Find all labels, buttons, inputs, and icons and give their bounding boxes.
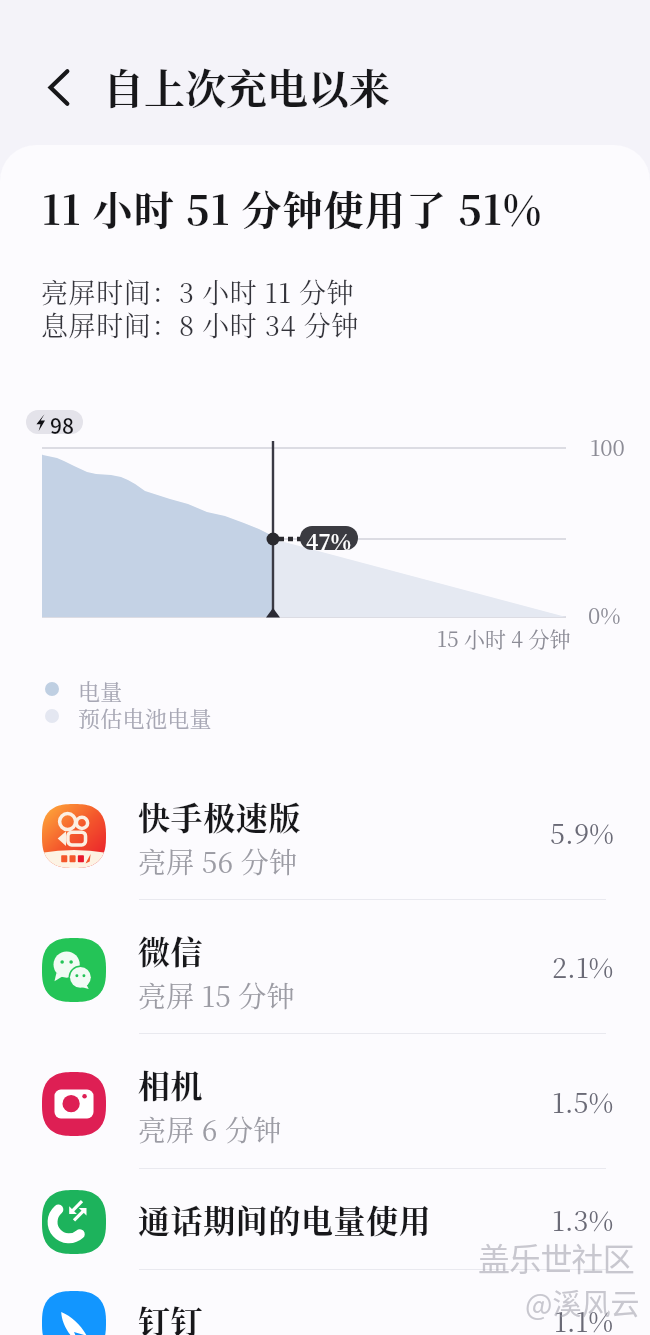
button[interactable]: 通话期间的电量使用 — [0, 1169, 650, 1269]
staticText: @溪风云 — [525, 1281, 640, 1323]
button[interactable]: 快手极速版 — [0, 766, 650, 899]
staticText: 1.5% — [552, 1082, 614, 1121]
staticText: 微信 — [138, 927, 204, 973]
staticText: 亮屏时间：3 小时 11 分钟 息屏时间：8 小时 34 分钟 — [41, 272, 359, 344]
button[interactable]: 相机 — [0, 1034, 650, 1168]
staticText: 快手极速版 — [138, 793, 302, 839]
staticText: 电量 — [78, 675, 123, 702]
staticText: 亮屏 15 分钟 — [138, 975, 295, 1015]
staticText: 1.1% — [554, 1301, 614, 1335]
staticText: 亮屏 6 分钟 — [138, 1109, 282, 1149]
staticText: 自上次充电以来 — [103, 57, 390, 116]
staticText: 亮屏 56 分钟 — [138, 841, 298, 881]
staticText: 预估电池电量 — [78, 702, 212, 729]
staticText: 11 小时 51 分钟使用了 51% — [42, 179, 543, 236]
staticText: 1.3% — [552, 1200, 614, 1239]
staticText: 2.1% — [552, 947, 614, 986]
staticText: 15 小时 4 分钟 — [437, 623, 571, 653]
staticText: 通话期间的电量使用 — [138, 1196, 432, 1242]
staticText: 47% — [306, 526, 352, 550]
button[interactable]: 微信 — [0, 900, 650, 1033]
staticText: 5.9% — [550, 813, 614, 852]
button[interactable]: 钉钉 — [0, 1270, 650, 1335]
staticText: 钉钉 — [138, 1297, 204, 1335]
staticText: 0% — [588, 599, 621, 631]
staticText: 盖乐世社区 — [478, 1234, 635, 1280]
staticText: 相机 — [138, 1061, 204, 1107]
staticText: 98 — [50, 410, 74, 434]
button[interactable]: Back — [25, 54, 91, 120]
staticText: 100 — [590, 431, 625, 463]
